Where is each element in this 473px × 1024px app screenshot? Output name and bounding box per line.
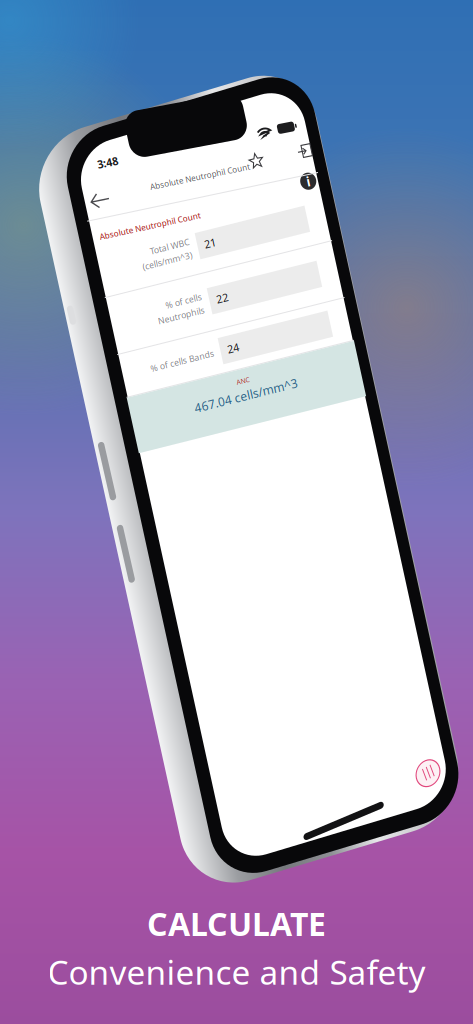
staticText: Convenience and Safety: [47, 950, 425, 994]
staticText: 467.04 cells/mm^3: [128, 333, 340, 365]
staticText: % of cells Bands: [59, 242, 189, 265]
staticText: 24: [217, 239, 241, 268]
staticText: Absolute Neutrophil Count: [73, 9, 275, 31]
button[interactable]: Back: [0, 0, 90, 44]
staticText: % of cells: [115, 130, 189, 153]
staticText: Absolute Neutrophil Count: [0, 9, 202, 31]
button[interactable]: 22: [203, 128, 429, 180]
staticText: CALCULATE: [147, 902, 326, 945]
button[interactable]: 24: [203, 227, 429, 279]
staticText: Neutrophils: [94, 156, 189, 179]
staticText: ANC: [220, 311, 247, 329]
staticText: 22: [217, 140, 241, 169]
